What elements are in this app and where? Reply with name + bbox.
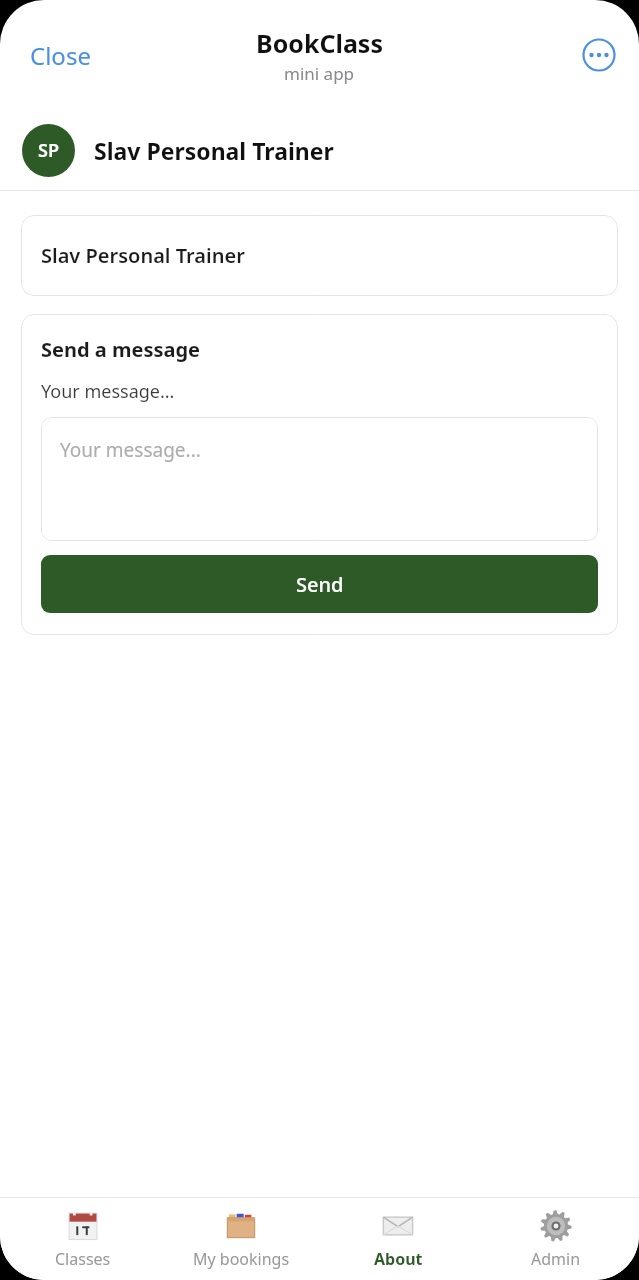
button[interactable]: About	[323, 1198, 473, 1280]
button[interactable]: More options	[577, 33, 621, 77]
staticText: Your message...	[60, 437, 201, 463]
button[interactable]: SP	[0, 110, 639, 190]
button[interactable]: Slav Personal Trainer	[21, 215, 618, 296]
staticText: Send a message	[41, 336, 201, 363]
staticText: Your message...	[41, 379, 175, 404]
staticText: Classes	[55, 1248, 111, 1270]
button[interactable]: My bookings	[166, 1198, 316, 1280]
staticText: About	[374, 1248, 423, 1270]
staticText: Close	[30, 39, 91, 72]
staticText: Slav Personal Trainer	[41, 242, 245, 269]
staticText: My bookings	[193, 1248, 290, 1270]
staticText: mini app	[284, 62, 355, 85]
button[interactable]: Send	[41, 555, 598, 613]
staticText: SP	[38, 138, 59, 163]
staticText: Send	[296, 571, 344, 598]
button[interactable]: Admin	[481, 1198, 631, 1280]
button[interactable]: Classes	[8, 1198, 158, 1280]
staticText: Admin	[531, 1248, 581, 1270]
button[interactable]: Your message...	[41, 417, 598, 541]
staticText: Slav Personal Trainer	[94, 135, 334, 166]
button[interactable]: Close	[14, 29, 107, 82]
staticText: BookClass	[256, 26, 383, 60]
